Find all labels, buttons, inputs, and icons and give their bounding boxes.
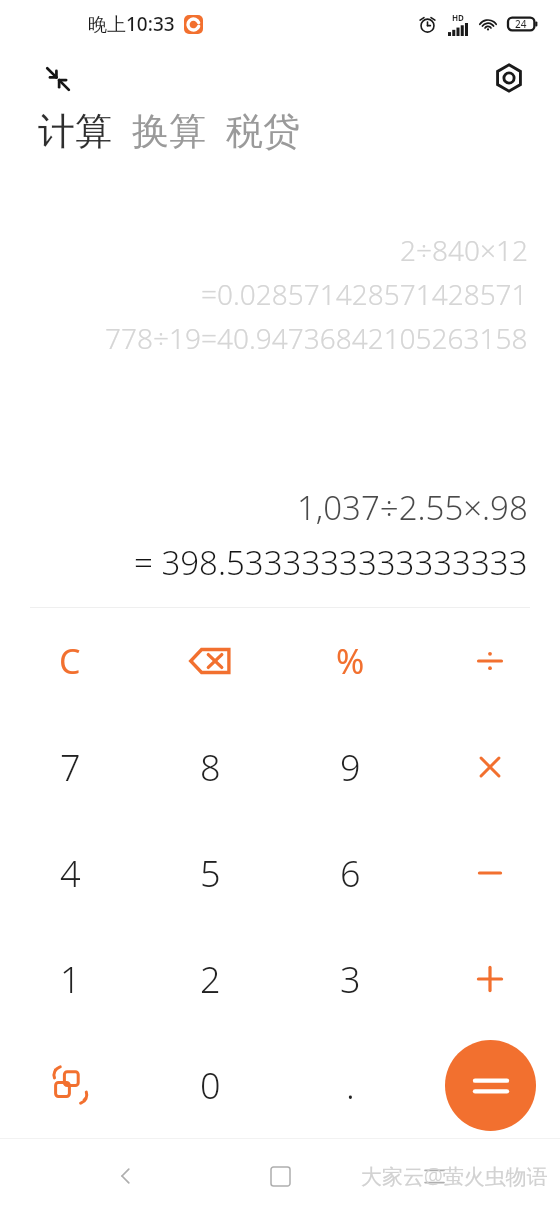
button[interactable]: 税贷 bbox=[216, 108, 310, 155]
button[interactable]: Convert bbox=[0, 1032, 140, 1138]
staticText: 换算 bbox=[132, 108, 206, 155]
staticText: 8 bbox=[200, 743, 221, 792]
staticText: HD bbox=[452, 12, 464, 23]
button[interactable]: 0 bbox=[140, 1032, 280, 1138]
staticText: 778÷19=40.94736842105263158 bbox=[105, 319, 528, 357]
other: Convert bbox=[50, 1065, 90, 1105]
button[interactable]: Minus bbox=[420, 820, 560, 926]
staticText: 3 bbox=[340, 955, 361, 1004]
staticText: 7 bbox=[60, 743, 81, 792]
button[interactable]: Plus bbox=[420, 926, 560, 1032]
other: Plus bbox=[473, 962, 507, 996]
button[interactable]: 3 bbox=[280, 926, 420, 1032]
other: Minus bbox=[474, 857, 506, 889]
button[interactable]: Home bbox=[252, 1148, 308, 1204]
staticText: 24 bbox=[515, 17, 527, 31]
button[interactable]: . bbox=[280, 1032, 420, 1138]
staticText: 0 bbox=[200, 1061, 221, 1110]
button[interactable]: C bbox=[0, 608, 140, 714]
button[interactable]: Back bbox=[98, 1148, 154, 1204]
other: Multiply bbox=[474, 751, 506, 783]
button[interactable]: Backspace bbox=[140, 608, 280, 714]
staticText: 9 bbox=[340, 743, 361, 792]
button[interactable]: 1 bbox=[0, 926, 140, 1032]
staticText: 晚上10:33 bbox=[88, 11, 175, 37]
button[interactable]: Settings bbox=[484, 53, 534, 103]
button[interactable]: 5 bbox=[140, 820, 280, 926]
other: Divide bbox=[472, 643, 508, 679]
button[interactable]: 4 bbox=[0, 820, 140, 926]
staticText: 1,037÷2.55×.98 bbox=[297, 485, 528, 530]
staticText: . bbox=[346, 1061, 355, 1110]
staticText: 4 bbox=[60, 849, 81, 898]
button[interactable]: 8 bbox=[140, 714, 280, 820]
staticText: 1 bbox=[60, 955, 81, 1004]
staticText: % bbox=[336, 638, 365, 684]
staticText: 税贷 bbox=[226, 108, 300, 155]
button[interactable]: Multiply bbox=[420, 714, 560, 820]
staticText: 2 bbox=[200, 955, 221, 1004]
button[interactable]: 6 bbox=[280, 820, 420, 926]
staticText: 2÷840×12 bbox=[400, 231, 528, 269]
staticText: = 398.5333333333333333 bbox=[134, 540, 528, 585]
button[interactable]: 9 bbox=[280, 714, 420, 820]
staticText: 6 bbox=[340, 849, 361, 898]
staticText: 5 bbox=[200, 849, 221, 898]
button[interactable]: 7 bbox=[0, 714, 140, 820]
button[interactable]: Recents bbox=[406, 1148, 462, 1204]
button[interactable]: 2 bbox=[140, 926, 280, 1032]
button[interactable]: Divide bbox=[420, 608, 560, 714]
staticText: 计算 bbox=[38, 108, 112, 155]
button[interactable]: Equals bbox=[420, 1032, 560, 1138]
button[interactable]: 计算 bbox=[38, 108, 122, 155]
staticText: C bbox=[59, 638, 81, 684]
other: Backspace bbox=[189, 645, 231, 677]
button[interactable]: Equals bbox=[445, 1040, 536, 1131]
button[interactable]: Collapse bbox=[34, 55, 80, 101]
staticText: =0.028571428571428571 bbox=[201, 275, 528, 313]
button[interactable]: % bbox=[280, 608, 420, 714]
staticText: 大家云@萤火虫物语 bbox=[361, 1162, 548, 1191]
button[interactable]: 换算 bbox=[122, 108, 216, 155]
